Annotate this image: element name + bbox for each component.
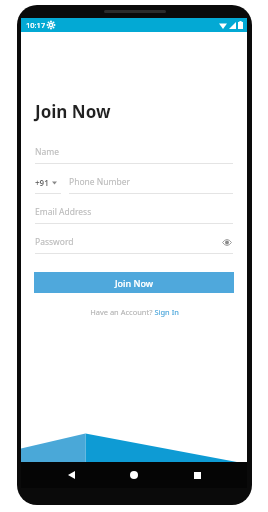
staticText: 10:17 [26,20,46,30]
staticText: Join Now [115,277,154,289]
button[interactable]: Name [35,146,233,164]
staticText: Have an Account? Sign In [90,307,179,317]
staticText: +91 [35,177,49,188]
button[interactable]: Password [35,236,233,254]
button[interactable]: Email Address [35,206,233,224]
staticText: Password [35,236,74,248]
button[interactable]: Recent apps [189,467,205,483]
staticText: Phone Number [69,176,130,188]
staticText: Name [35,146,59,158]
staticText: Email Address [35,206,92,218]
button[interactable]: Have an Account? Sign In [21,307,247,317]
button[interactable]: Home [126,467,142,483]
button[interactable]: Join Now [34,272,234,293]
button[interactable]: +91 [35,176,233,194]
button[interactable]: Show password [221,236,233,248]
button[interactable]: Back [63,467,79,483]
staticText: Join Now [35,100,111,123]
